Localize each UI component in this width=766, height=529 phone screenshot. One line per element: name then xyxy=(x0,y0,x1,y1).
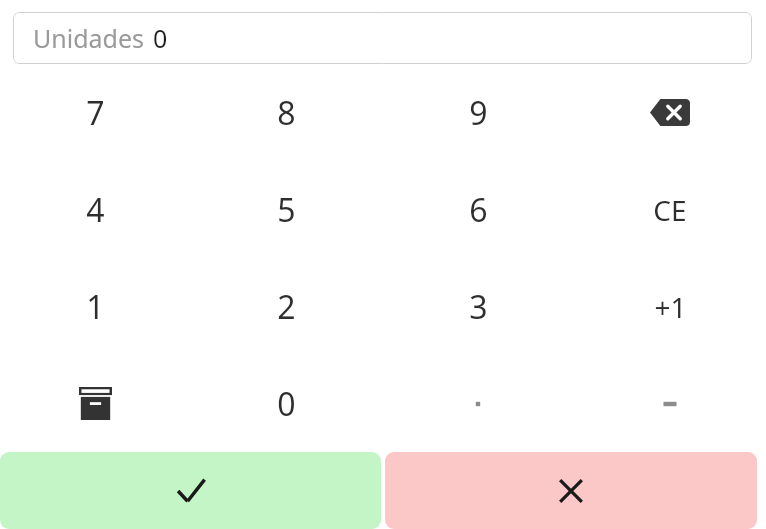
staticText: 7 xyxy=(86,91,105,135)
staticText: 3 xyxy=(469,285,488,329)
button[interactable]: 5 xyxy=(191,161,382,258)
button[interactable]: 0 xyxy=(191,355,382,452)
button[interactable]: 2 xyxy=(191,258,382,355)
button[interactable]: Accept xyxy=(0,452,381,529)
button[interactable]: Minus xyxy=(574,355,766,452)
staticText: 8 xyxy=(277,91,296,135)
staticText: 5 xyxy=(277,188,296,232)
button[interactable]: 7 xyxy=(0,64,191,161)
button[interactable]: 6 xyxy=(382,161,574,258)
staticText: 4 xyxy=(86,188,105,232)
staticText: 0 xyxy=(153,21,168,55)
button[interactable]: CE xyxy=(574,161,766,258)
staticText: 1 xyxy=(86,285,105,329)
staticText: Unidades xyxy=(33,21,145,55)
staticText: 0 xyxy=(277,382,296,426)
button[interactable]: Backspace xyxy=(574,64,766,161)
button[interactable]: 9 xyxy=(382,64,574,161)
button[interactable]: 3 xyxy=(382,258,574,355)
button[interactable]: 1 xyxy=(0,258,191,355)
button[interactable]: Unidades xyxy=(13,12,752,64)
staticText: +1 xyxy=(654,288,687,326)
staticText: 6 xyxy=(469,188,488,232)
button[interactable]: 8 xyxy=(191,64,382,161)
button[interactable]: Decimal point xyxy=(382,355,574,452)
staticText: 9 xyxy=(469,91,488,135)
staticText: 2 xyxy=(277,285,296,329)
staticText: CE xyxy=(653,191,687,229)
button[interactable]: Archive xyxy=(0,355,191,452)
button[interactable]: Cancel xyxy=(385,452,757,529)
button[interactable]: 4 xyxy=(0,161,191,258)
button[interactable]: +1 xyxy=(574,258,766,355)
